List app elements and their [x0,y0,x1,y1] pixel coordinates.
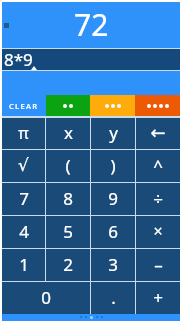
button[interactable]: ^ [136,150,180,182]
button[interactable]: 7 [2,183,45,215]
button[interactable]: 0 [2,282,90,314]
button[interactable]: + [136,282,180,314]
button[interactable]: 4 [2,216,45,248]
staticText: π [18,122,29,144]
staticText: 6 [108,220,118,243]
staticText: + [153,286,163,309]
button[interactable]: 6 [91,216,135,248]
button[interactable]: ( [46,150,90,182]
staticText: 0 [41,286,51,309]
staticText: ( [65,154,71,177]
button[interactable]: √ [2,150,45,182]
staticText: 8 [63,187,73,210]
staticText: 72 [74,4,109,45]
button[interactable]: ← [136,118,180,149]
button[interactable]: 5 [46,216,90,248]
button[interactable]: 8*9 [2,49,180,70]
button[interactable]: ÷ [136,183,180,215]
button[interactable]: 3 [91,249,135,281]
button[interactable]: π [2,118,45,149]
button[interactable]: ) [91,150,135,182]
button[interactable]: x [46,118,90,149]
button[interactable]: CLEAR [2,95,46,116]
button[interactable]: . [91,282,135,314]
staticText: × [153,220,163,242]
staticText: ^ [153,154,163,177]
staticText: ) [110,154,116,177]
staticText: 8*9 [4,48,33,69]
staticText: 5 [63,220,73,243]
button[interactable]: 8 [46,183,90,215]
staticText: √ [18,155,29,175]
staticText: 7 [19,187,29,210]
staticText: 1 [19,253,29,276]
staticText: . [111,286,116,309]
staticText: 9 [108,187,118,210]
button[interactable]: Colour option 3 [90,95,135,116]
staticText: – [154,253,163,276]
button[interactable]: Colour option 2 [46,95,90,116]
button[interactable]: – [136,249,180,281]
button[interactable]: y [91,118,135,149]
staticText: CLEAR [9,101,39,111]
button[interactable]: 2 [46,249,90,281]
button[interactable]: × [136,216,180,248]
staticText: 4 [19,220,29,243]
staticText: ← [150,122,166,143]
staticText: 3 [108,253,118,276]
staticText: 2 [63,253,73,276]
staticText: ÷ [153,187,163,210]
staticText: x [64,121,73,144]
button[interactable]: 9 [91,183,135,215]
staticText: y [109,121,118,144]
button[interactable]: 1 [2,249,45,281]
button[interactable]: Colour option 4 [135,95,180,116]
